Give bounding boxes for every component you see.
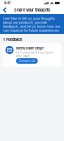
staticText: Need more help?: [16, 46, 44, 50]
button[interactable]: Back: [2, 6, 8, 14]
staticText: Contact Us: [18, 59, 35, 63]
staticText: 1 Feedback: [3, 37, 22, 42]
staticText: Share your thoughts: [14, 8, 50, 12]
staticText: Feel free to tell us your thoughts about…: [3, 16, 60, 33]
button[interactable]: Contact Us: [16, 58, 38, 64]
staticText: 9:41: [4, 1, 10, 5]
staticText: Let us know if you have any issue: [16, 51, 53, 58]
